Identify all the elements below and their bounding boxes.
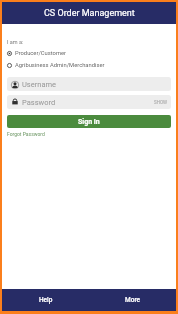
button[interactable]: Agribusiness Admin/Merchandiser [2, 59, 176, 71]
staticText: Producer/Customer [15, 50, 67, 57]
button[interactable]: Producer/Customer [2, 47, 176, 59]
staticText: I am a: [7, 39, 24, 45]
button[interactable]: CS Order Management [2, 2, 176, 24]
staticText: Help [39, 296, 53, 304]
button[interactable]: Password [7, 95, 150, 109]
button[interactable]: More [89, 289, 176, 311]
staticText: Sign In [78, 118, 100, 126]
staticText: Agribusiness Admin/Merchandiser [15, 62, 105, 69]
button[interactable]: Forgot Password [2, 131, 45, 137]
button[interactable]: Username [7, 77, 171, 91]
staticText: CS Order Management [44, 8, 135, 19]
staticText: Password [22, 98, 56, 107]
button[interactable]: Sign In [7, 115, 171, 128]
staticText: More [125, 296, 141, 304]
staticText: Username [22, 80, 57, 89]
button[interactable]: Help [2, 289, 89, 311]
button[interactable]: SHOW [150, 95, 171, 109]
staticText: SHOW [154, 100, 167, 105]
